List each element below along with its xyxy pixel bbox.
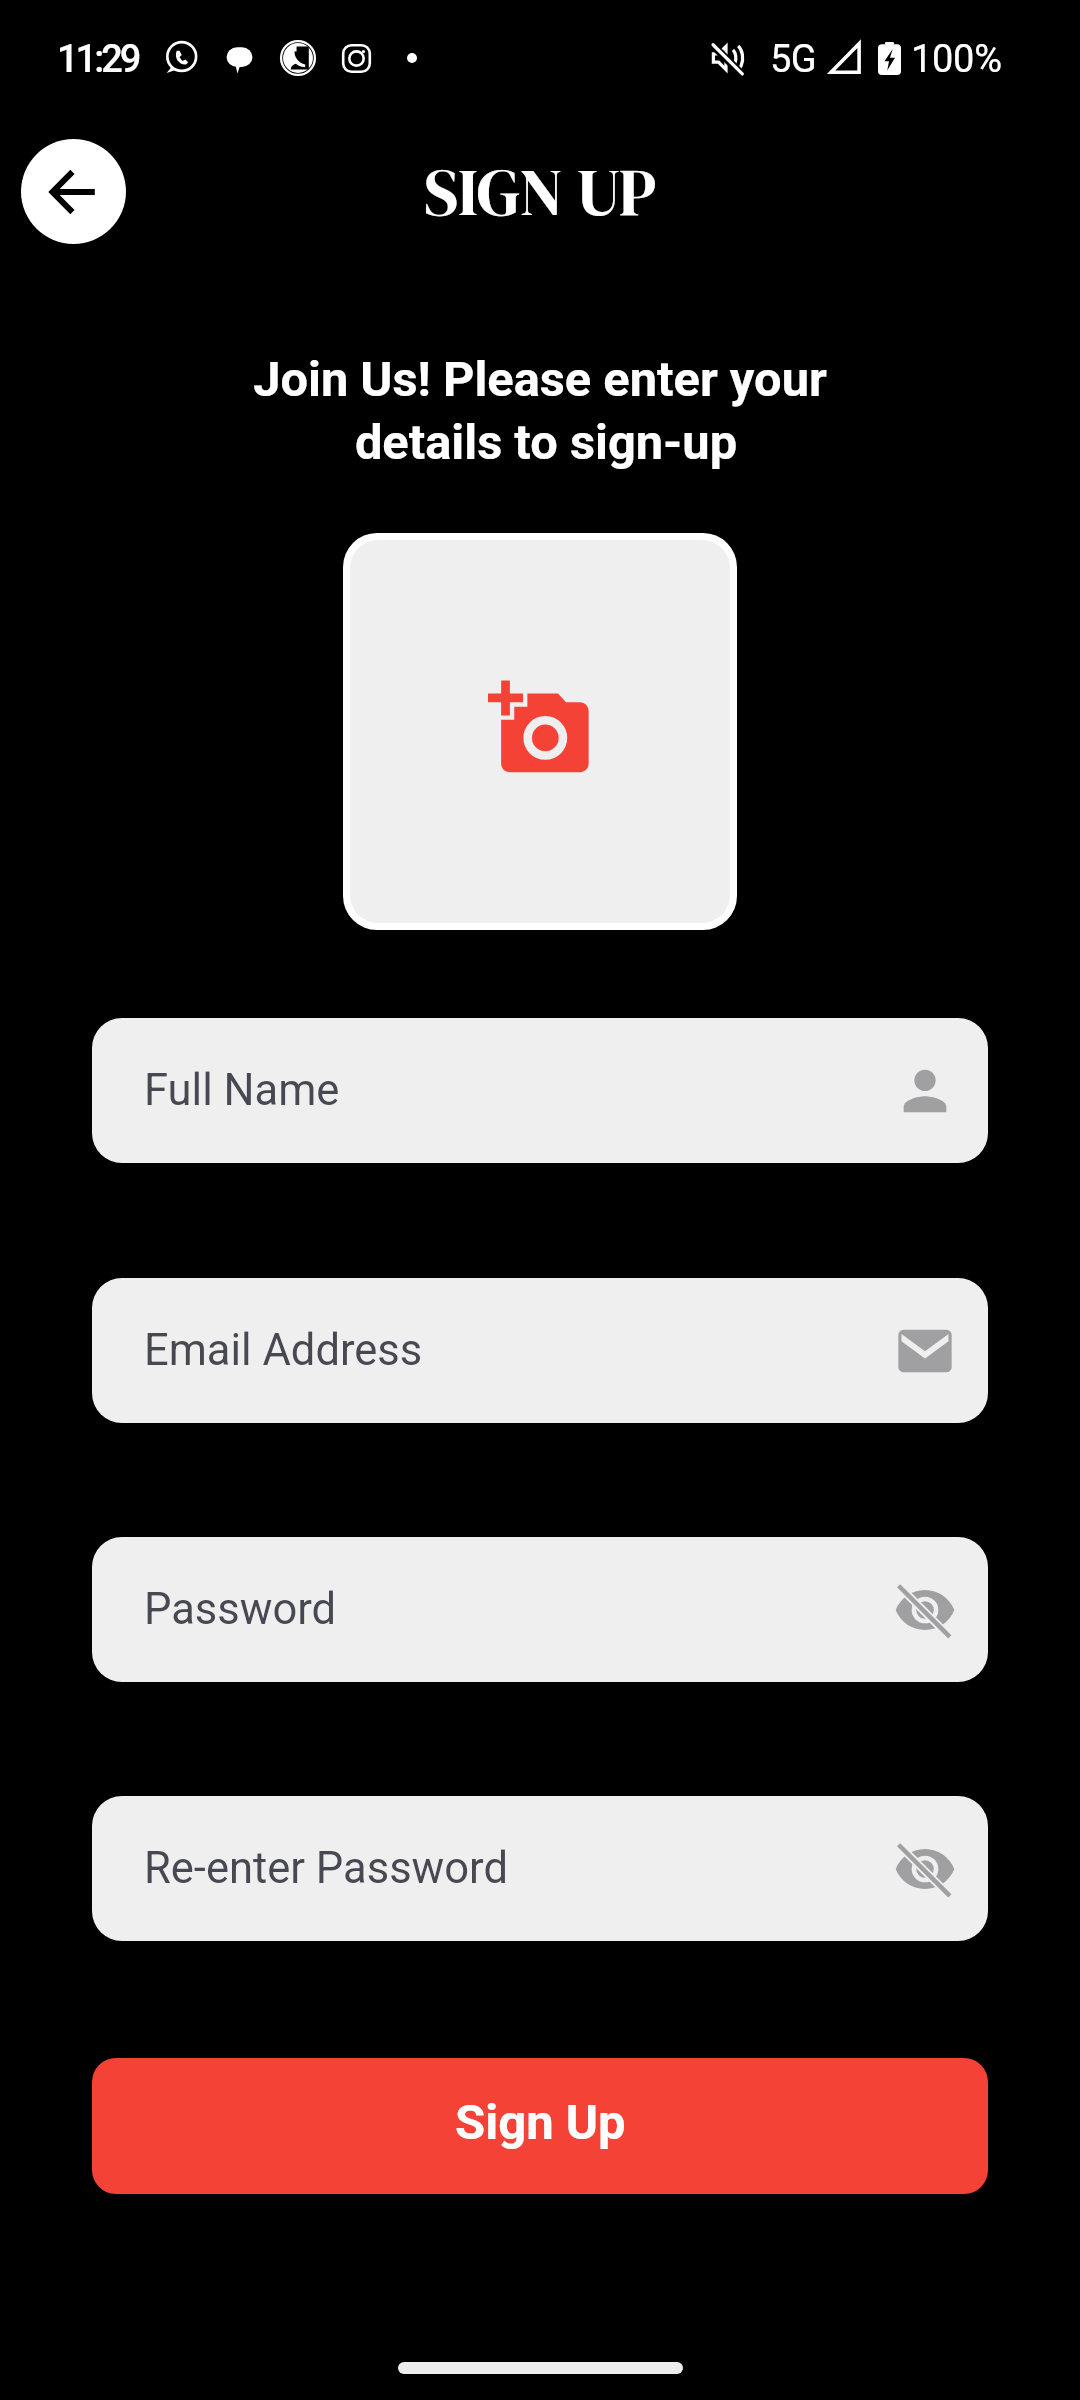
- staticText: Sign Up: [455, 2094, 626, 2151]
- staticText: 100%: [911, 37, 1002, 82]
- button[interactable]: Add profile photo: [350, 540, 730, 923]
- staticText: Join Us! Please enter your: [0, 351, 1080, 408]
- button[interactable]: Sign Up: [92, 2058, 988, 2194]
- staticText: SIGN UP: [424, 147, 656, 237]
- staticText: Re-enter Password: [144, 1843, 508, 1894]
- staticText: 5G: [770, 37, 817, 82]
- button[interactable]: Back: [21, 139, 126, 244]
- staticText: Email Address: [144, 1325, 423, 1376]
- button[interactable]: Re-enter Password: [92, 1796, 988, 1941]
- staticText: Password: [144, 1584, 337, 1635]
- staticText: Full Name: [144, 1065, 340, 1116]
- button[interactable]: Password: [92, 1537, 988, 1682]
- button[interactable]: Email Address: [92, 1278, 988, 1423]
- staticText: details to sign-up: [6, 414, 1080, 471]
- button[interactable]: Full Name: [92, 1018, 988, 1163]
- staticText: 11:29: [57, 37, 139, 82]
